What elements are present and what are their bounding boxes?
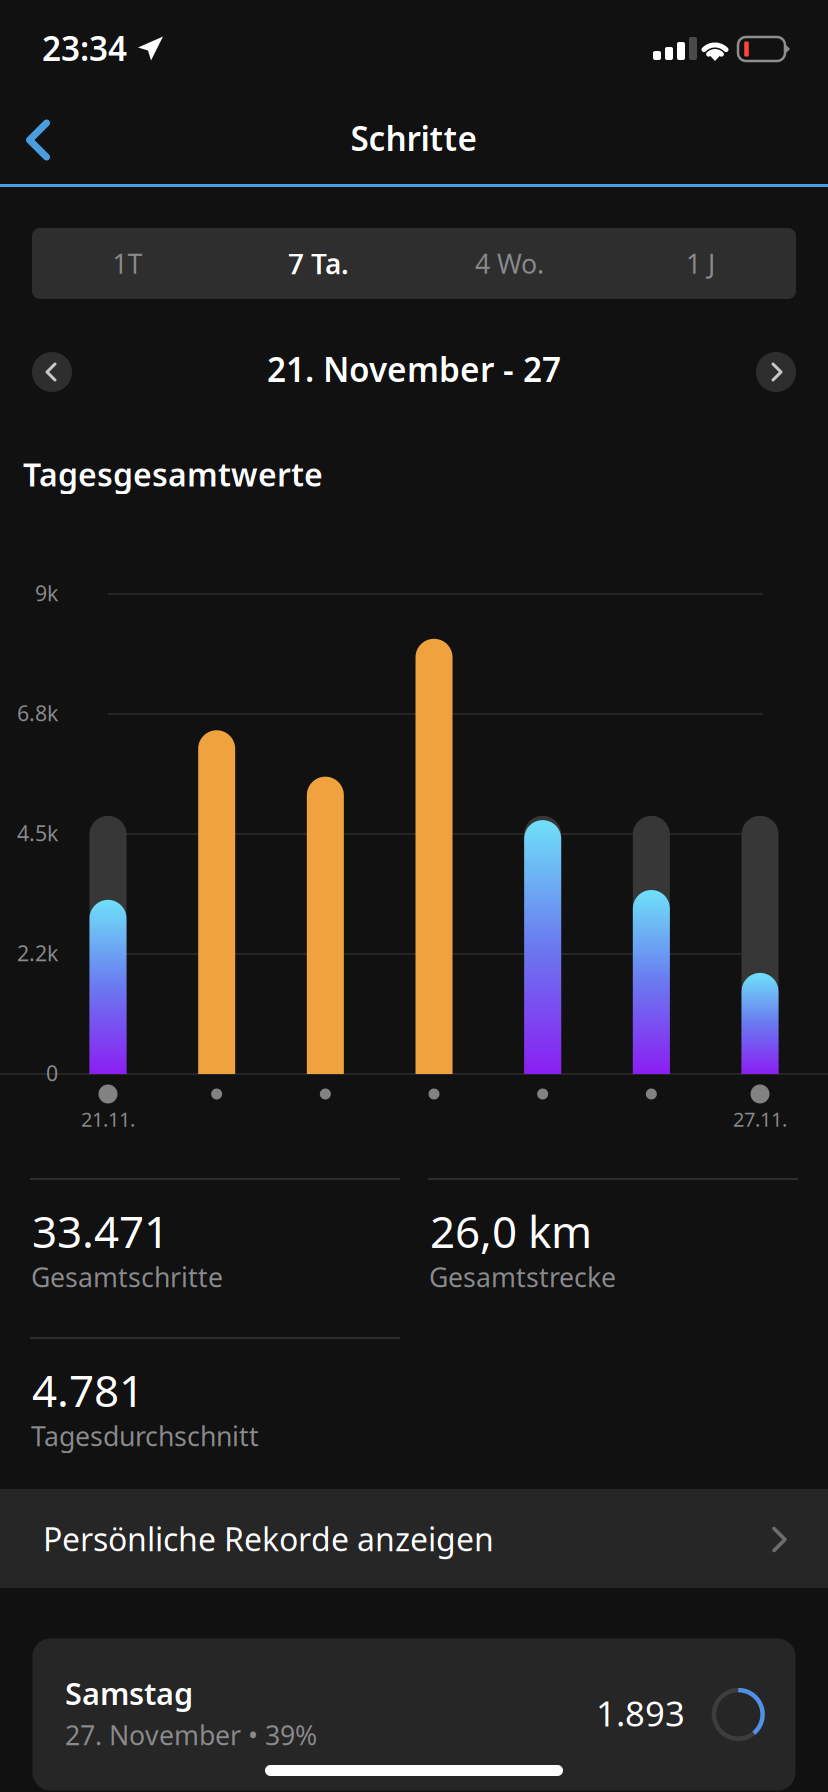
staticText: Gesamtschritte xyxy=(31,1259,223,1295)
staticText: Persönliche Rekorde anzeigen xyxy=(43,1518,494,1560)
staticText: 4.5k xyxy=(17,819,58,847)
staticText: Gesamtstrecke xyxy=(429,1259,616,1295)
staticText: 2.2k xyxy=(17,939,58,967)
staticText: 4 Wo. xyxy=(475,246,544,281)
staticText: 21.11. xyxy=(81,1106,135,1132)
staticText: 1 J xyxy=(686,246,715,281)
staticText: 27. November • 39% xyxy=(65,1717,317,1753)
button[interactable]: Next week xyxy=(754,350,798,394)
staticText: 27.11. xyxy=(733,1106,787,1132)
button[interactable]: 7 Ta. xyxy=(223,228,414,299)
staticText: 33.471 xyxy=(32,1202,169,1260)
staticText: Schritte xyxy=(350,116,477,160)
staticText: 21. November - 27 xyxy=(267,347,561,391)
staticText: 9k xyxy=(35,579,58,607)
button[interactable]: Back xyxy=(0,96,80,184)
staticText: Samstag xyxy=(65,1673,193,1713)
button[interactable]: 1T xyxy=(32,228,223,299)
staticText: Tagesgesamtwerte xyxy=(23,453,323,495)
staticText: Tagesdurchschnitt xyxy=(31,1418,259,1454)
button[interactable]: 4 Wo. xyxy=(414,228,605,299)
staticText: 4.781 xyxy=(32,1361,144,1419)
staticText: 0 xyxy=(46,1059,58,1087)
staticText: 6.8k xyxy=(17,699,58,727)
staticText: 7 Ta. xyxy=(288,245,349,282)
button[interactable]: Persönliche Rekorde anzeigen xyxy=(0,1489,828,1588)
staticText: 26,0 km xyxy=(430,1202,592,1260)
staticText: 23:34 xyxy=(42,26,127,70)
button[interactable]: Previous week xyxy=(30,350,74,394)
staticText: 1T xyxy=(112,246,142,281)
staticText: 1.893 xyxy=(596,1690,685,1736)
button[interactable]: 1 J xyxy=(605,228,796,299)
